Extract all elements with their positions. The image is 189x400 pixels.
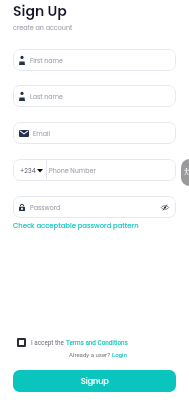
button[interactable]: I accept the (17, 338, 128, 347)
button[interactable]: Show password (159, 202, 170, 213)
staticText: Email (33, 129, 51, 138)
button[interactable]: Email (13, 122, 176, 144)
staticText: Already a user? (69, 351, 112, 358)
staticText: create an account (13, 23, 73, 32)
staticText: Password (30, 203, 61, 212)
button[interactable]: +234 (13, 159, 176, 181)
button[interactable]: Accessibility (181, 159, 189, 186)
staticText: First name (30, 56, 64, 65)
button[interactable]: Signup (13, 370, 176, 392)
staticText: +234 (20, 166, 36, 175)
staticText: Last name (30, 92, 63, 101)
button[interactable]: Last name (13, 85, 176, 107)
staticText: Phone Number (49, 166, 96, 175)
button[interactable]: Check acceptable password pattern (13, 221, 139, 231)
button[interactable]: Login (112, 351, 127, 358)
staticText: Terms and Conditions (66, 339, 128, 346)
button[interactable]: First name (13, 49, 176, 71)
staticText: I accept the (31, 339, 66, 346)
staticText: Signup (81, 376, 109, 387)
button[interactable]: Password (13, 196, 176, 218)
staticText: Sign Up (13, 1, 67, 21)
